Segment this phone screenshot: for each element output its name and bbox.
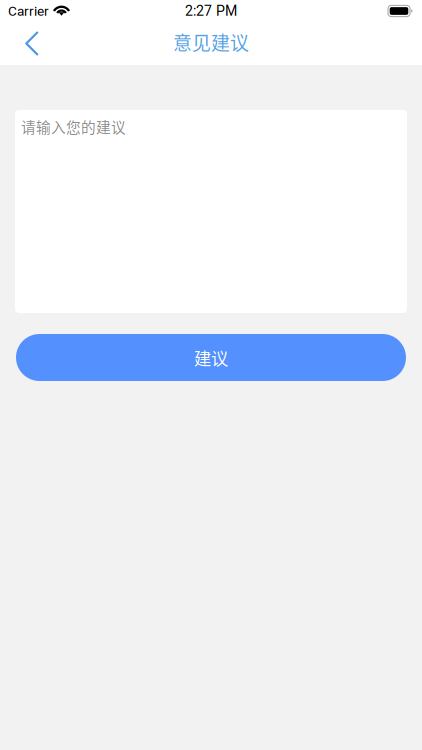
staticText: 请输入您的建议 <box>21 116 126 137</box>
button[interactable]: 请输入您的建议 <box>15 110 407 313</box>
staticText: 2:27 PM <box>185 3 237 19</box>
staticText: Carrier <box>8 3 49 19</box>
staticText: 意见建议 <box>173 28 249 56</box>
staticText: 建议 <box>194 345 228 370</box>
button[interactable]: 建议 <box>16 334 406 381</box>
button[interactable]: Back <box>0 22 52 64</box>
